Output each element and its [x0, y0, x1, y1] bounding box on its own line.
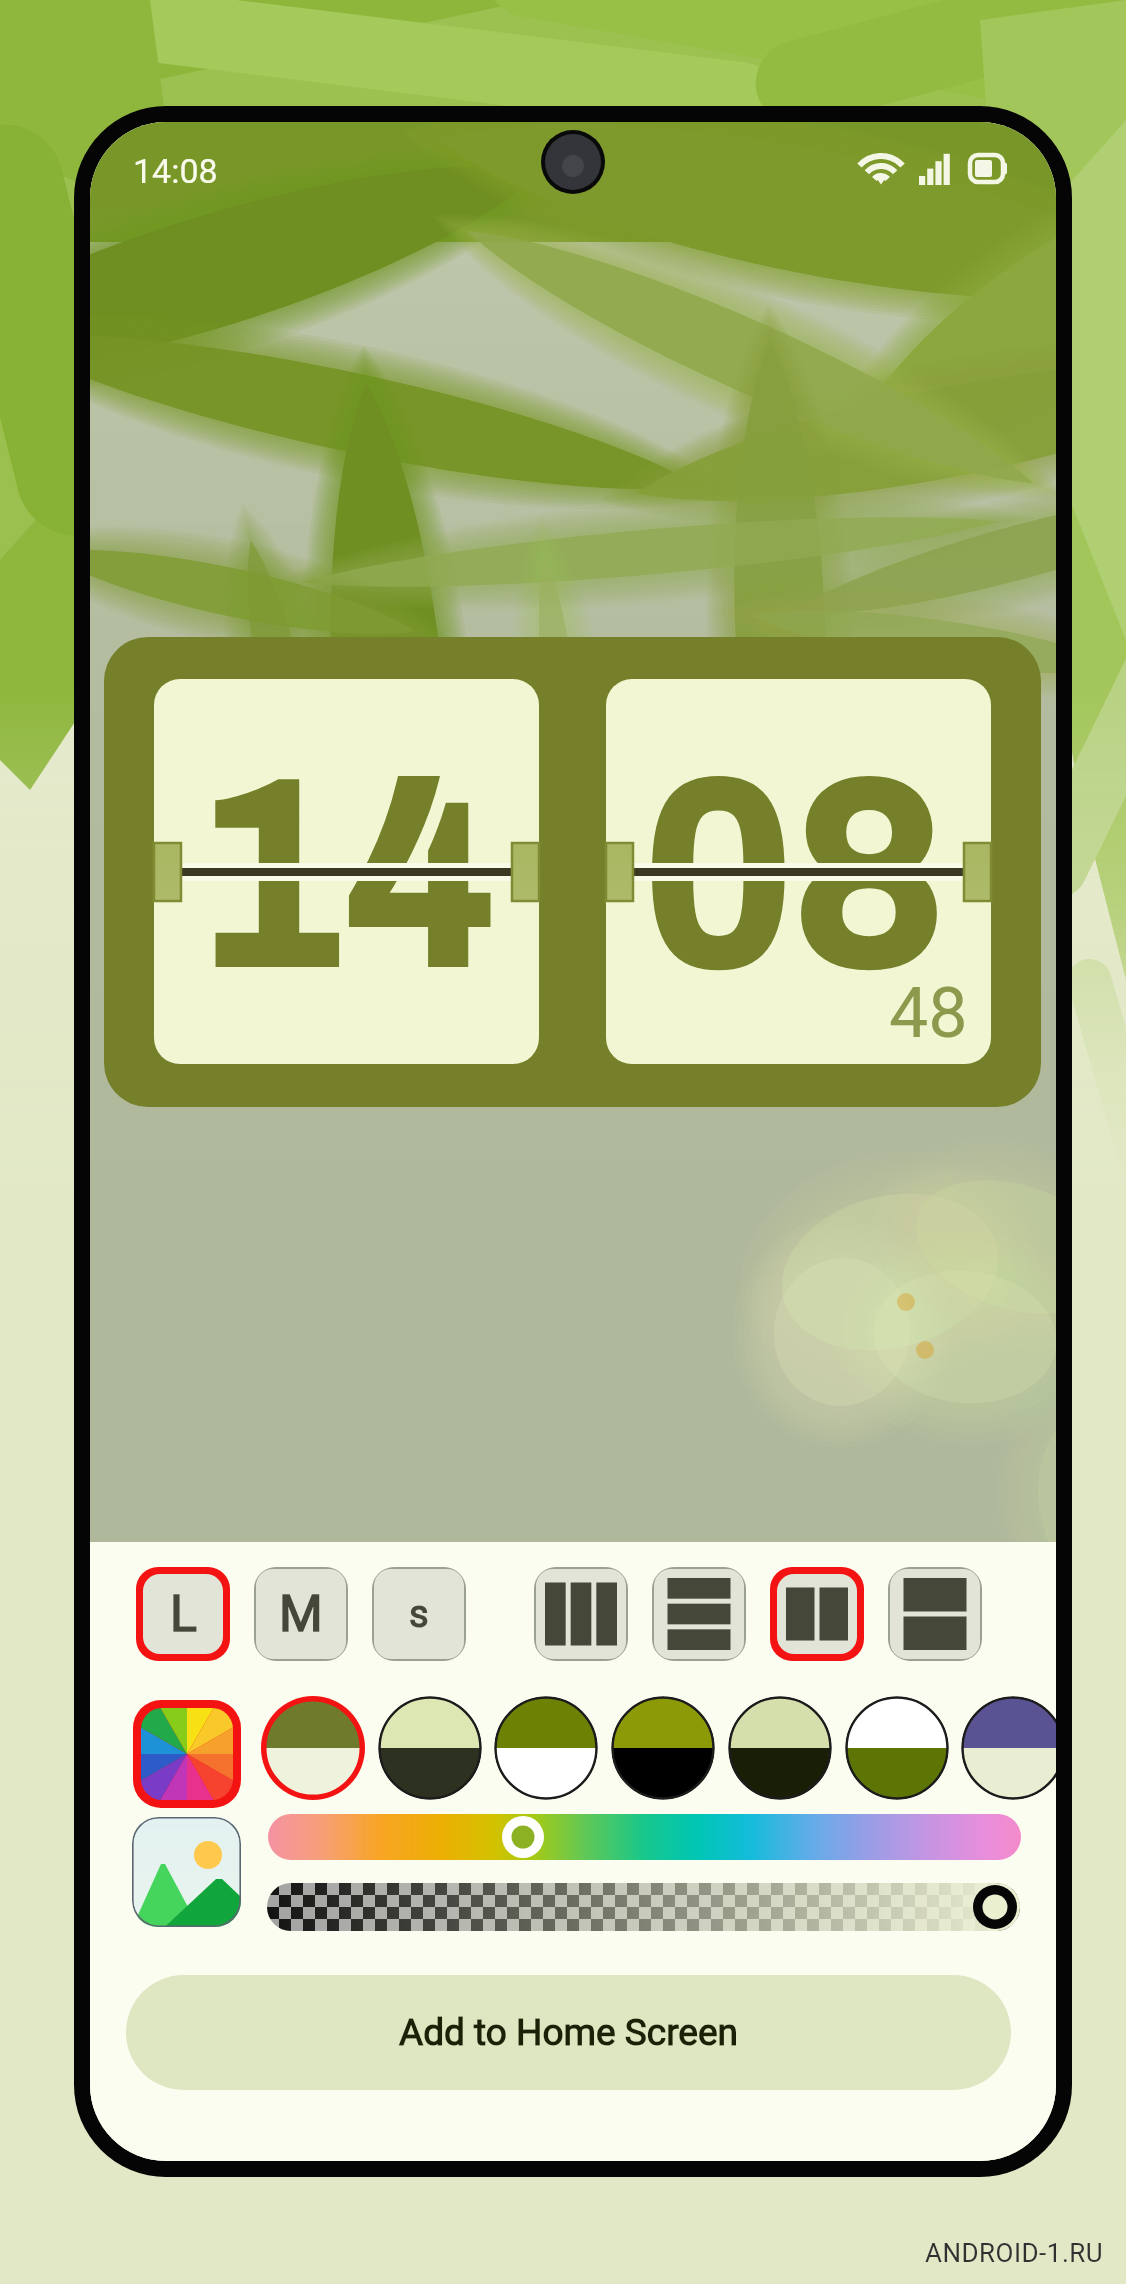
staticText: s [409, 1592, 429, 1637]
button[interactable]: Colour 2 [378, 1696, 482, 1800]
staticText: 14:08 [133, 151, 218, 191]
button[interactable]: Hue [268, 1814, 1021, 1860]
staticText: 14 [194, 733, 497, 1018]
button[interactable]: Flip clock widget preview [104, 637, 1041, 1107]
button[interactable]: Custom colour [141, 1708, 233, 1800]
button[interactable]: Colour 1 [261, 1696, 365, 1800]
button[interactable]: M [256, 1569, 346, 1659]
button[interactable]: L [143, 1574, 223, 1654]
button[interactable]: Pick image [132, 1817, 241, 1927]
staticText: L [170, 1585, 197, 1644]
staticText: ANDROID-1.RU [925, 2238, 1104, 2268]
button[interactable]: s [374, 1569, 464, 1659]
button[interactable]: Add to Home Screen [126, 1975, 1011, 2090]
staticText: 08 [643, 733, 945, 1018]
button[interactable]: Colour 3 [494, 1696, 598, 1800]
button[interactable]: Colour 5 [728, 1696, 832, 1800]
staticText: M [279, 1585, 323, 1644]
staticText: 48 [889, 972, 968, 1054]
button[interactable]: Colour 6 [845, 1696, 949, 1800]
button[interactable]: Three rows [654, 1569, 744, 1659]
button[interactable]: Two columns [777, 1574, 857, 1654]
button[interactable]: Two rows [890, 1569, 980, 1659]
button[interactable]: Colour 7 [961, 1696, 1056, 1800]
button[interactable]: Colour 4 [611, 1696, 715, 1800]
button[interactable]: Three columns [536, 1569, 626, 1659]
staticText: Add to Home Screen [399, 2011, 739, 2054]
button[interactable]: Opacity [267, 1883, 1020, 1931]
